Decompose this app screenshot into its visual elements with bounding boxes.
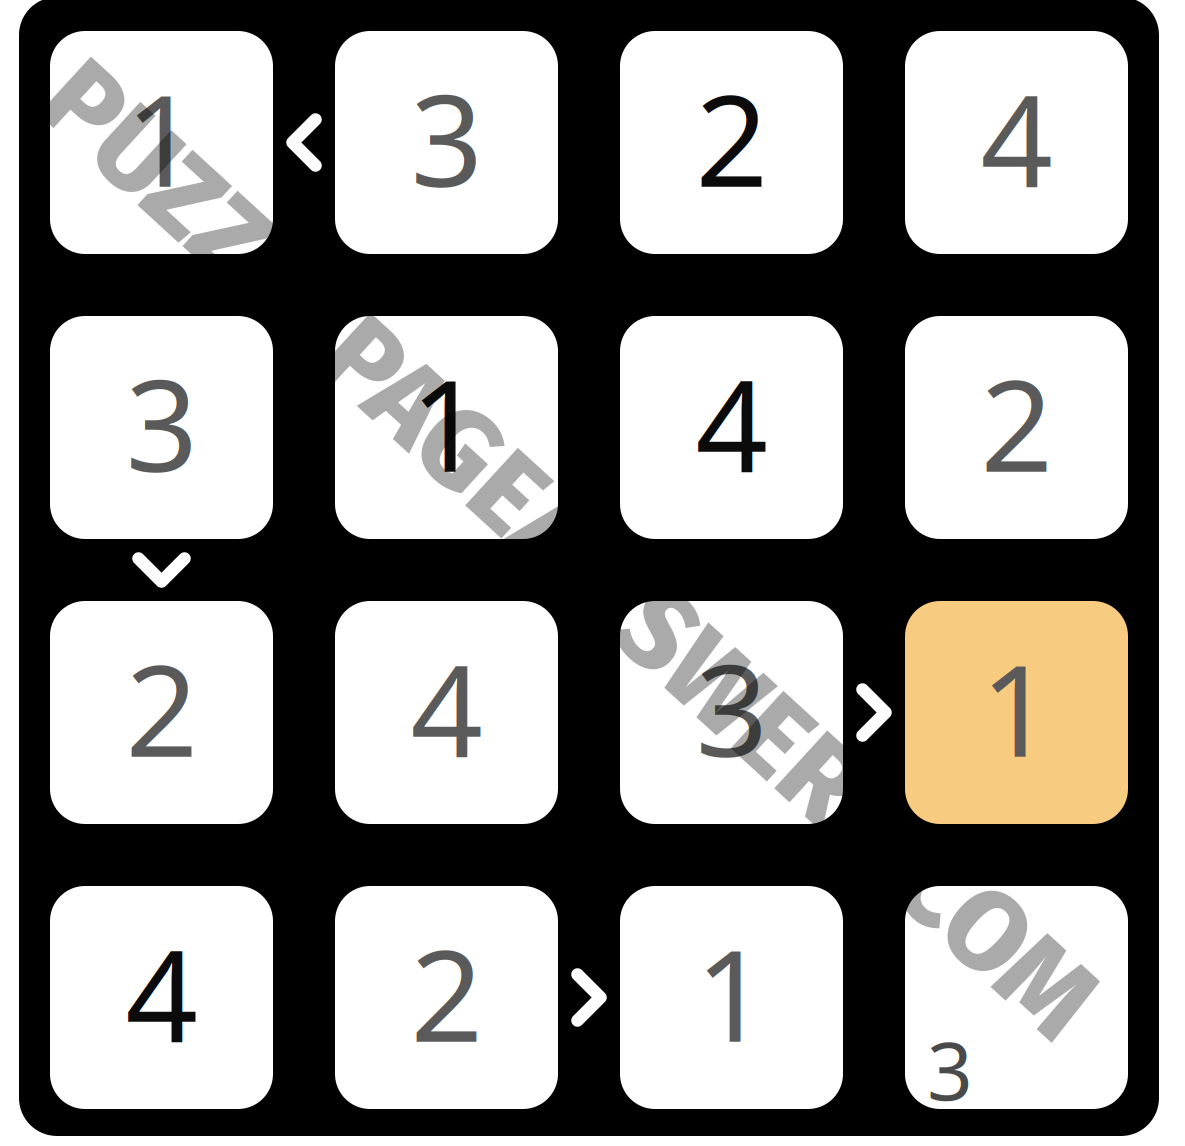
- button[interactable]: 3: [335, 31, 558, 254]
- staticText: 3: [927, 1016, 973, 1122]
- button[interactable]: 1: [50, 31, 273, 254]
- staticText: 1: [695, 908, 767, 1077]
- staticText: 1: [410, 338, 482, 507]
- button[interactable]: 3: [50, 316, 273, 539]
- button[interactable]: 1: [620, 886, 843, 1109]
- staticText: 3: [125, 338, 197, 507]
- staticText: 4: [125, 908, 197, 1077]
- staticText: 1: [980, 623, 1052, 792]
- staticText: PUZZLEPAGEANSWERS.COM: [0, 482, 1185, 617]
- staticText: 2: [980, 338, 1052, 507]
- staticText: 4: [980, 53, 1052, 222]
- staticText: 2: [695, 53, 767, 222]
- staticText: 4: [695, 338, 767, 507]
- staticText: 2: [410, 908, 482, 1077]
- button[interactable]: 2: [620, 31, 843, 254]
- staticText: 3: [695, 623, 767, 792]
- button[interactable]: 2: [905, 316, 1128, 539]
- staticText: 3: [410, 53, 482, 222]
- button[interactable]: 4: [50, 886, 273, 1109]
- button[interactable]: 1: [335, 316, 558, 539]
- button[interactable]: 2: [50, 601, 273, 824]
- staticText: 1: [125, 53, 197, 222]
- staticText: 2: [125, 623, 197, 792]
- button[interactable]: 4: [620, 316, 843, 539]
- button[interactable]: 3: [905, 886, 1128, 1109]
- button[interactable]: 4: [335, 601, 558, 824]
- button[interactable]: 1: [905, 601, 1128, 824]
- button[interactable]: 4: [905, 31, 1128, 254]
- staticText: 4: [410, 623, 482, 792]
- button[interactable]: 2: [335, 886, 558, 1109]
- button[interactable]: 3: [620, 601, 843, 824]
